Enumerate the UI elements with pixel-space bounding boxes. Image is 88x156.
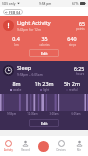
button[interactable]: Devices: [52, 136, 70, 156]
staticText: Sleep: [17, 64, 32, 72]
staticText: km: [14, 43, 19, 47]
staticText: Record: [21, 148, 30, 152]
staticText: 8m: [12, 80, 21, 87]
staticText: Edit: [41, 121, 48, 126]
staticText: 0.4: [12, 35, 20, 42]
staticText: 9:58 pm: [39, 2, 52, 6]
staticText: 67%: [72, 2, 79, 6]
staticText: Light Activity: [17, 19, 51, 27]
staticText: 9:58pm: [1, 112, 22, 116]
staticText: awake: [13, 88, 22, 92]
staticText: steps: [69, 43, 76, 47]
staticText: 5h 2m: [64, 80, 80, 87]
staticText: Devices: [56, 148, 66, 152]
staticText: Me: [77, 148, 81, 152]
staticText: 9:58pm – 6:05am: [17, 73, 43, 77]
staticText: hours: [76, 72, 85, 76]
staticText: calories: [39, 43, 50, 47]
staticText: FEB 04: [9, 10, 21, 14]
button[interactable]: FEB 04: [3, 9, 23, 15]
staticText: light: [43, 88, 49, 92]
staticText: SOS only: [2, 2, 16, 6]
staticText: 65: [79, 20, 85, 27]
button[interactable]: Add: [34, 136, 52, 156]
staticText: 3:00am: [43, 112, 65, 116]
staticText: Edit: [41, 51, 48, 56]
staticText: points: [76, 27, 85, 31]
button[interactable]: Edit: [29, 49, 59, 57]
staticText: restful: [69, 88, 78, 92]
staticText: 12:00am: [22, 112, 43, 116]
button[interactable]: Activity: [0, 136, 17, 156]
staticText: 1h 23m: [34, 80, 54, 87]
staticText: 6:25: [74, 65, 85, 72]
button[interactable]: Sleep: [0, 61, 88, 80]
staticText: 9:43pm for 12m: [17, 28, 41, 32]
button[interactable]: Edit: [29, 119, 59, 127]
staticText: 6:05am: [65, 112, 87, 116]
button[interactable]: Me: [70, 136, 88, 156]
staticText: 35: [41, 35, 48, 42]
staticText: 640: [67, 35, 77, 42]
staticText: Activity: [4, 148, 13, 152]
button[interactable]: Light Activity: [0, 16, 88, 35]
button[interactable]: Record: [17, 136, 34, 156]
